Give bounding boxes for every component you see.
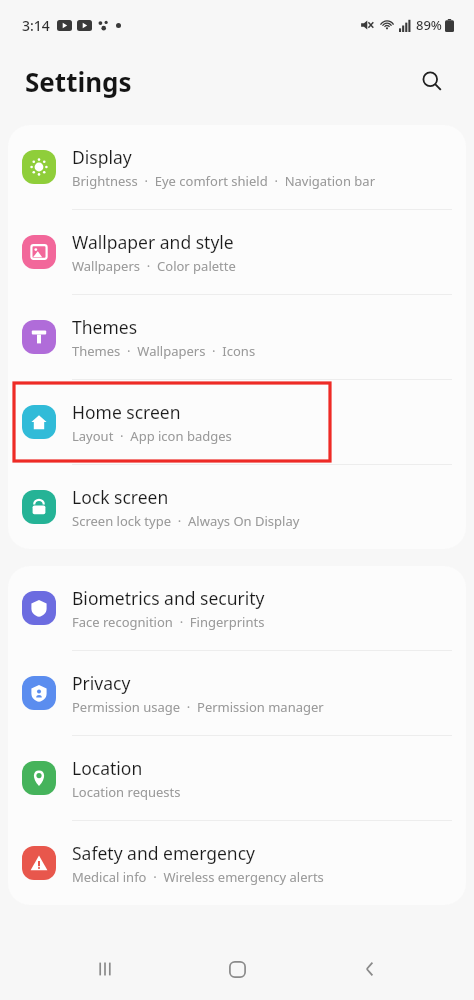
staticText: Biometrics and security [72, 586, 265, 610]
button[interactable]: Home [209, 941, 265, 997]
staticText: Settings [25, 64, 132, 99]
button[interactable]: Privacy [8, 651, 466, 735]
staticText: Brightness · Eye comfort shield · Naviga… [72, 172, 376, 190]
button[interactable]: Back [342, 941, 398, 997]
staticText: 3:14 [22, 16, 50, 35]
staticText: Permission usage · Permission manager [72, 698, 324, 716]
staticText: Face recognition · Fingerprints [72, 613, 265, 631]
staticText: Wallpaper and style [72, 230, 234, 254]
staticText: Screen lock type · Always On Display [72, 512, 300, 530]
staticText: Lock screen [72, 485, 169, 509]
button[interactable]: Themes [8, 295, 466, 379]
button[interactable]: Biometrics and security [8, 566, 466, 650]
staticText: Themes [72, 315, 138, 339]
staticText: Wallpapers · Color palette [72, 257, 236, 275]
button[interactable]: Lock screen [8, 465, 466, 549]
staticText: Themes · Wallpapers · Icons [72, 342, 256, 360]
staticText: Safety and emergency [72, 841, 255, 865]
staticText: Location requests [72, 783, 181, 801]
staticText: Display [72, 145, 132, 169]
button[interactable]: Home screen [8, 380, 466, 464]
button[interactable]: Recents [77, 941, 133, 997]
button[interactable]: Location [8, 736, 466, 820]
staticText: Home screen [72, 400, 181, 424]
button[interactable]: Safety and emergency [8, 821, 466, 905]
staticText: Medical info · Wireless emergency alerts [72, 868, 324, 886]
staticText: 89% [416, 16, 442, 34]
staticText: Privacy [72, 671, 131, 695]
staticText: Location [72, 756, 143, 780]
button[interactable]: Display [8, 125, 466, 209]
button[interactable]: Wallpaper and style [8, 210, 466, 294]
staticText: Layout · App icon badges [72, 427, 232, 445]
button[interactable]: Search [412, 61, 452, 101]
